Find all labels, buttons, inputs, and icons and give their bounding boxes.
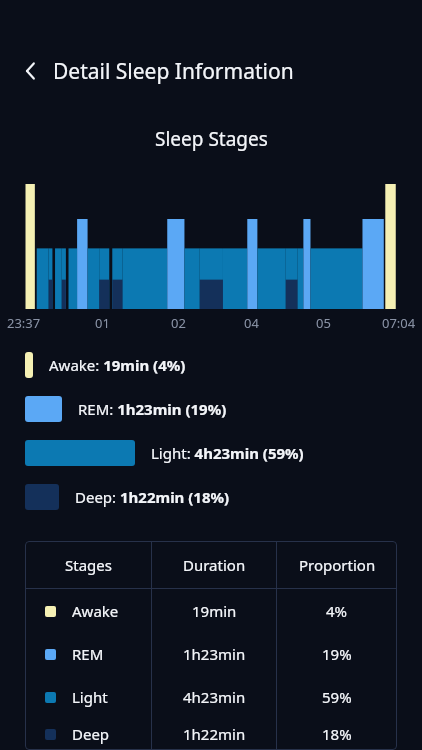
staticText: 07:04 xyxy=(382,314,416,332)
staticText: 1h22min xyxy=(183,724,246,744)
staticText: 19min xyxy=(192,601,237,621)
button[interactable]: REM xyxy=(25,632,397,675)
button[interactable]: Awake xyxy=(25,589,397,632)
staticText: 04 xyxy=(244,314,259,332)
staticText: 01 xyxy=(95,314,110,332)
staticText: 19% xyxy=(322,644,352,664)
staticText: REM: 1h23min (19%) xyxy=(78,399,227,419)
staticText: Awake: 19min (4%) xyxy=(49,355,186,375)
staticText: Light xyxy=(72,687,108,707)
staticText: Sleep Stages xyxy=(155,126,268,152)
button[interactable]: Light xyxy=(25,675,397,718)
staticText: 4h23min xyxy=(183,687,246,707)
staticText: Stages xyxy=(65,555,112,575)
staticText: Proportion xyxy=(299,555,376,575)
staticText: Duration xyxy=(183,555,246,575)
button[interactable]: Light: 4h23min (59%) xyxy=(0,431,422,475)
staticText: 1h23min xyxy=(183,644,246,664)
staticText: 05 xyxy=(316,314,331,332)
button[interactable]: Awake: 19min (4%) xyxy=(0,343,422,387)
staticText: 18% xyxy=(322,724,352,744)
button[interactable]: Deep xyxy=(25,718,397,750)
staticText: Light: 4h23min (59%) xyxy=(151,443,304,463)
staticText: Detail Sleep Information xyxy=(53,57,294,86)
button[interactable]: Back xyxy=(14,54,48,88)
staticText: Deep: 1h22min (18%) xyxy=(75,487,230,507)
button[interactable]: REM: 1h23min (19%) xyxy=(0,387,422,431)
staticText: 59% xyxy=(322,687,352,707)
button[interactable]: Stages xyxy=(25,541,397,588)
button[interactable]: Deep: 1h22min (18%) xyxy=(0,475,422,519)
staticText: REM xyxy=(72,644,104,664)
staticText: Awake xyxy=(72,601,119,621)
staticText: 02 xyxy=(171,314,186,332)
staticText: 23:37 xyxy=(7,314,41,332)
staticText: Deep xyxy=(72,724,110,744)
staticText: 4% xyxy=(326,601,348,621)
